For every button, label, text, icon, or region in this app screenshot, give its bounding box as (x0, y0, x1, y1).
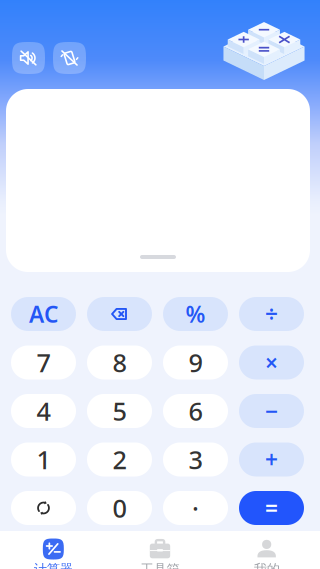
button[interactable]: 4 (11, 394, 76, 428)
button[interactable]: 我的 (213, 531, 320, 569)
button[interactable]: 7 (11, 345, 76, 379)
button[interactable]: × (239, 345, 304, 379)
button[interactable]: · (163, 491, 228, 525)
staticText: % (185, 299, 205, 329)
button[interactable]: 5 (87, 394, 152, 428)
button[interactable]: 计算器 (0, 531, 107, 569)
button[interactable]: + (239, 442, 304, 476)
button[interactable]: = (239, 491, 304, 525)
button[interactable]: 6 (163, 394, 228, 428)
button[interactable]: Vibrate off (53, 42, 86, 74)
staticText: 3 (188, 443, 202, 476)
staticText: 4 (36, 394, 50, 428)
staticText: 2 (112, 443, 126, 476)
button[interactable]: Mute (12, 42, 45, 74)
button[interactable]: 3 (163, 442, 228, 476)
button[interactable]: % (163, 297, 228, 331)
button[interactable]: 0 (87, 491, 152, 525)
staticText: 计算器 (34, 561, 73, 569)
staticText: 6 (188, 394, 202, 428)
staticText: × (265, 347, 278, 377)
staticText: 我的 (254, 561, 280, 569)
staticText: 5 (112, 394, 126, 428)
button[interactable]: 8 (87, 345, 152, 379)
button[interactable]: AC (11, 297, 76, 331)
staticText: 7 (36, 346, 50, 379)
button[interactable]: History (11, 491, 76, 525)
staticText: AC (29, 299, 58, 329)
staticText: = (265, 493, 278, 523)
button[interactable]: 2 (87, 442, 152, 476)
staticText: · (192, 491, 199, 525)
staticText: ÷ (265, 299, 278, 329)
button[interactable]: 1 (11, 442, 76, 476)
button[interactable]: ÷ (239, 297, 304, 331)
button[interactable]: 9 (163, 345, 228, 379)
staticText: 工具箱 (140, 561, 179, 569)
staticText: + (265, 444, 278, 474)
staticText: − (265, 396, 278, 426)
staticText: 1 (36, 443, 50, 476)
button[interactable]: Delete (87, 297, 152, 331)
staticText: 9 (188, 346, 202, 379)
button[interactable]: 工具箱 (107, 531, 213, 569)
button[interactable]: − (239, 394, 304, 428)
staticText: 8 (112, 346, 126, 379)
staticText: 0 (112, 491, 126, 525)
